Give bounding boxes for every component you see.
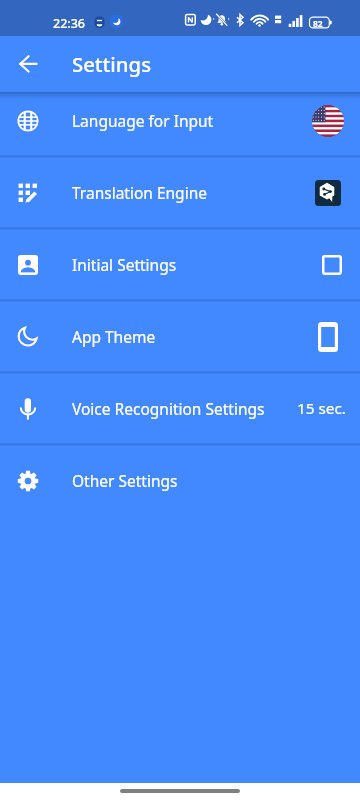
staticText: 15 sec. [297, 398, 346, 419]
button[interactable]: Translation Engine [0, 157, 360, 229]
button[interactable]: Language for Input [0, 85, 360, 157]
staticText: App Theme [72, 326, 312, 347]
staticText: Settings [72, 50, 152, 78]
staticText: Translation Engine [72, 182, 312, 203]
button[interactable]: Voice Recognition Settings [0, 373, 360, 445]
button[interactable]: Other Settings [0, 445, 360, 517]
staticText: 82 [313, 18, 323, 30]
button[interactable]: Initial Settings [0, 229, 360, 301]
staticText: Voice Recognition Settings [72, 398, 312, 419]
staticText: Other Settings [72, 470, 312, 491]
staticText: 22:36 [53, 15, 86, 32]
staticText: Initial Settings [72, 254, 312, 275]
button[interactable]: Back [8, 44, 48, 84]
staticText: Language for Input [72, 110, 312, 131]
button[interactable]: App Theme [0, 301, 360, 373]
